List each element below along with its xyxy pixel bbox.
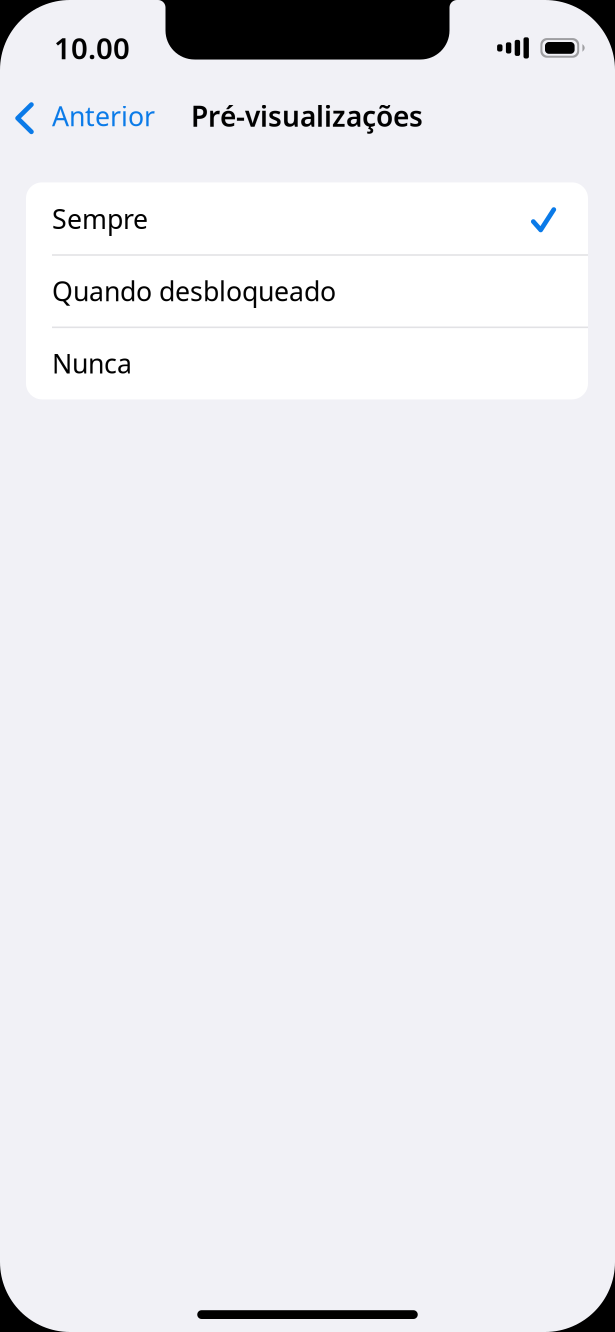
staticText: Nunca <box>52 345 132 381</box>
staticText: Quando desbloqueado <box>52 273 336 309</box>
button[interactable]: Anterior <box>0 80 167 152</box>
staticText: 10.00 <box>54 28 130 67</box>
staticText: Anterior <box>52 98 155 134</box>
button[interactable]: Nunca <box>26 327 588 399</box>
button[interactable]: Sempre <box>26 182 588 255</box>
button[interactable]: Quando desbloqueado <box>26 255 588 327</box>
staticText: Pré-visualizações <box>191 97 423 135</box>
staticText: Sempre <box>52 201 148 236</box>
